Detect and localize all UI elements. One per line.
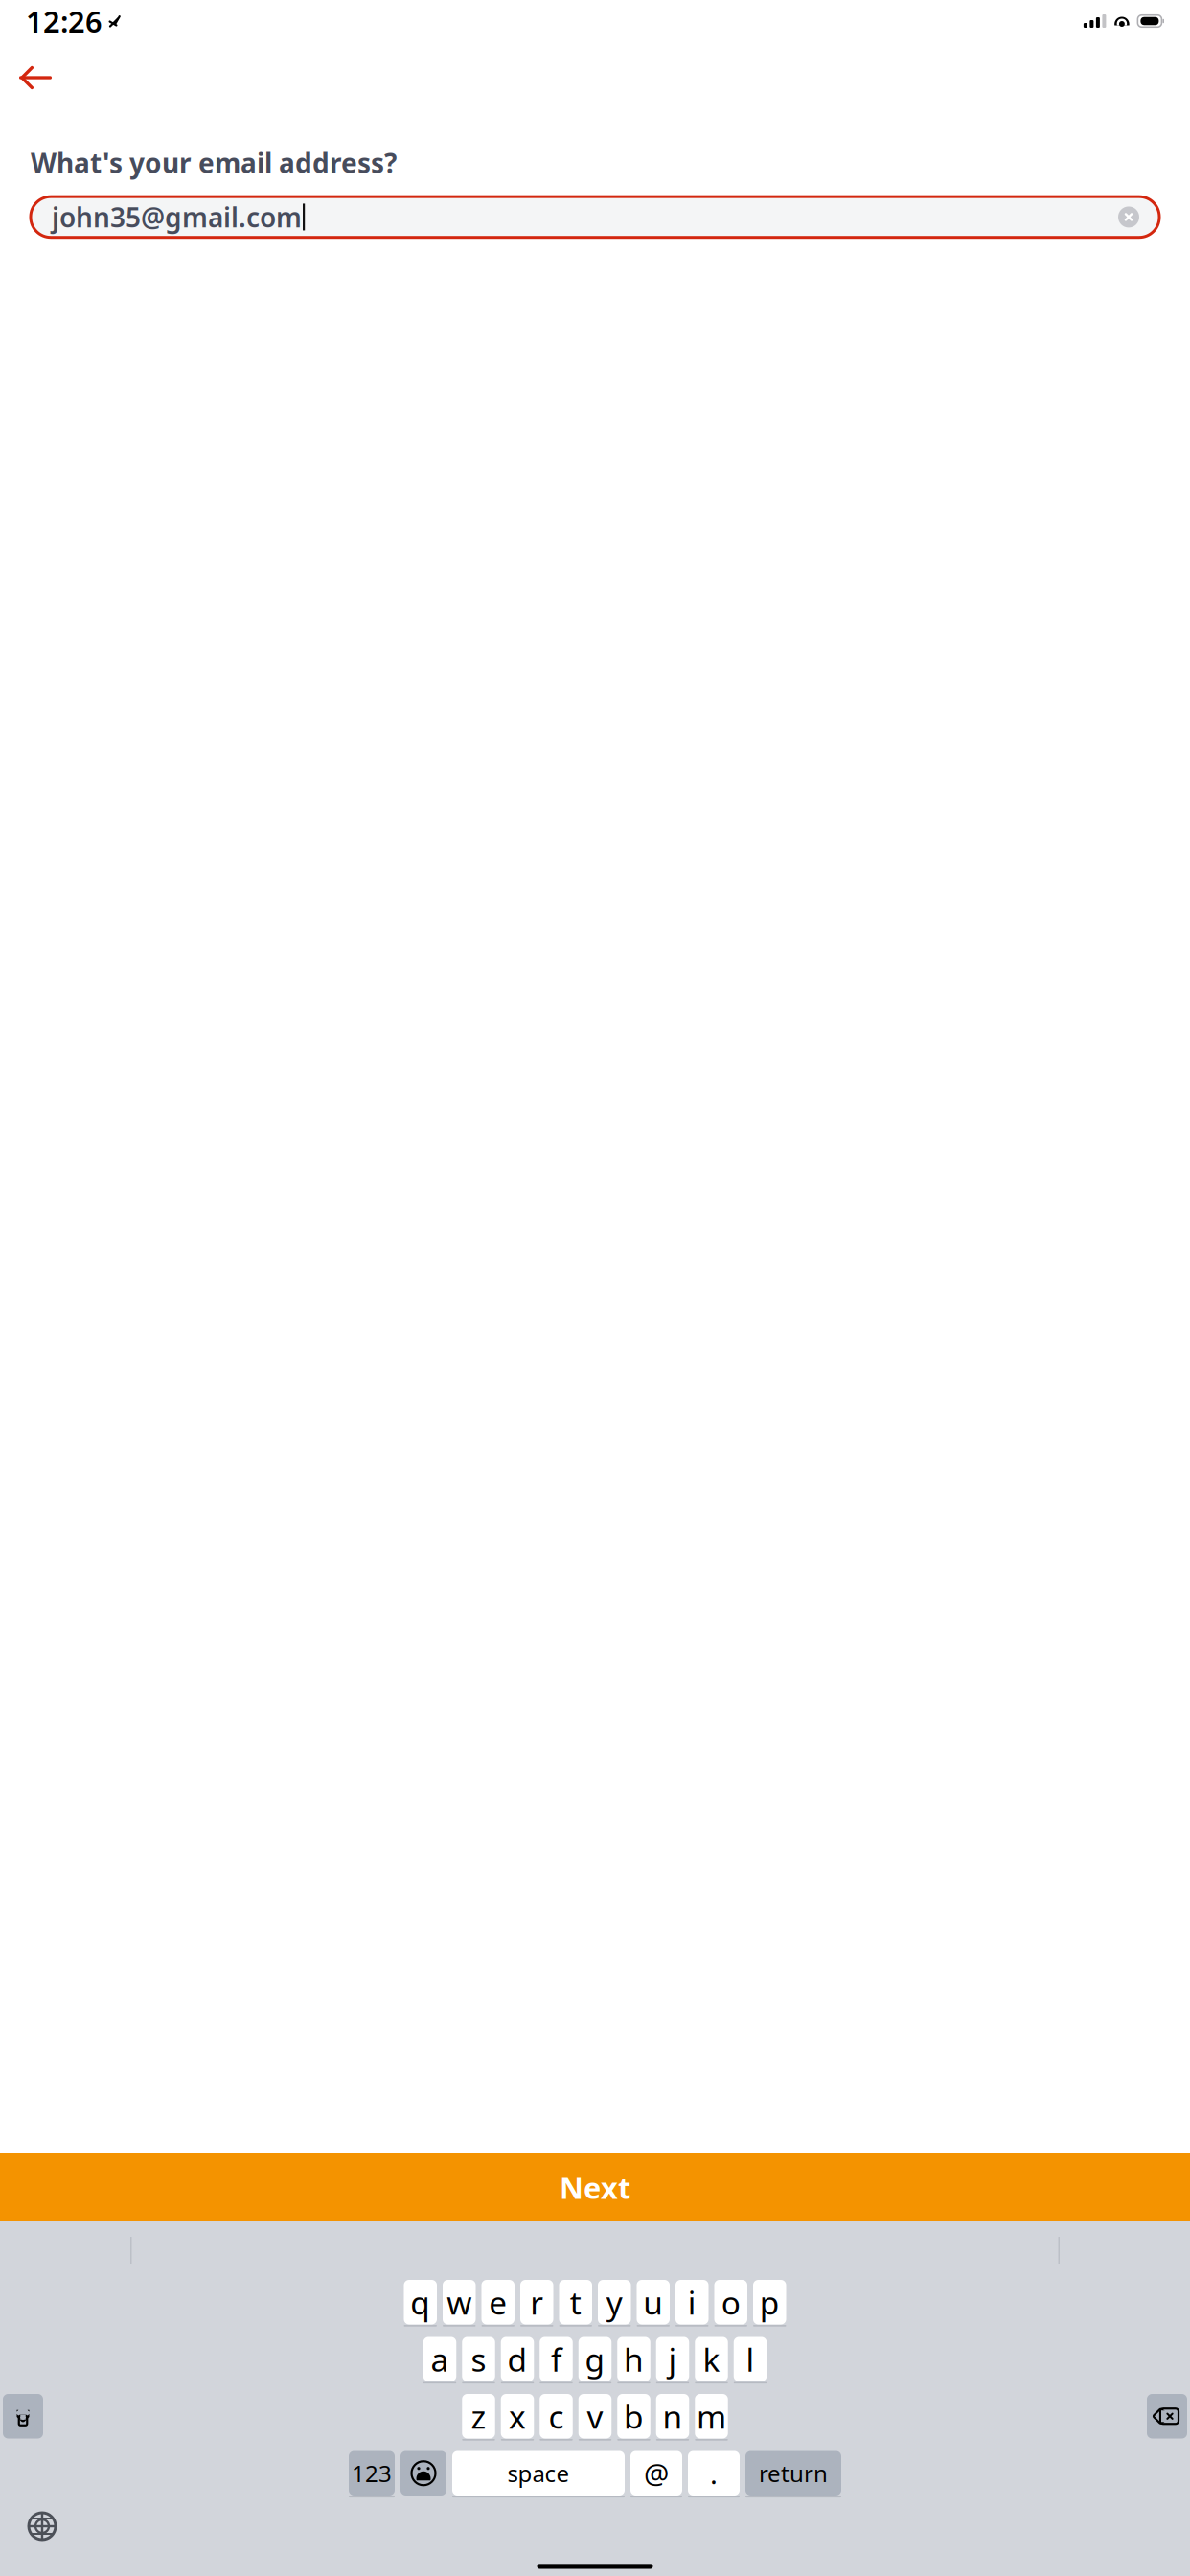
button[interactable]: b (617, 2394, 650, 2438)
staticText: m (697, 2395, 726, 2437)
button[interactable]: y (598, 2280, 631, 2324)
button[interactable]: f (540, 2337, 573, 2381)
staticText: i (688, 2281, 696, 2323)
button[interactable]: Delete (1147, 2394, 1187, 2438)
button[interactable]: Emoji (400, 2451, 446, 2495)
staticText: l (746, 2338, 755, 2380)
staticText: space (507, 2458, 570, 2489)
button[interactable]: j (656, 2337, 689, 2381)
button[interactable]: 123 (349, 2451, 395, 2495)
staticText: Next (560, 2168, 630, 2207)
staticText: j (668, 2338, 677, 2380)
button[interactable]: l (734, 2337, 767, 2381)
staticText: john35@gmail.com (52, 199, 302, 235)
button[interactable]: i (675, 2280, 709, 2324)
staticText: e (489, 2281, 507, 2323)
button[interactable]: p (753, 2280, 786, 2324)
button[interactable]: q (404, 2280, 437, 2324)
staticText: d (507, 2338, 527, 2380)
button[interactable]: Shift (3, 2394, 43, 2438)
staticText: z (471, 2395, 486, 2437)
staticText: o (721, 2281, 740, 2323)
staticText: t (570, 2281, 581, 2323)
staticText: c (549, 2395, 564, 2437)
staticText: n (663, 2395, 683, 2437)
staticText: v (587, 2395, 603, 2437)
button[interactable]: Next (0, 2153, 1190, 2221)
staticText: q (410, 2281, 430, 2323)
button[interactable]: w (443, 2280, 476, 2324)
button[interactable]: z (462, 2394, 495, 2438)
staticText: r (530, 2281, 543, 2323)
button[interactable]: r (520, 2280, 553, 2324)
button[interactable]: @ (630, 2451, 682, 2495)
button[interactable]: v (579, 2394, 612, 2438)
staticText: w (447, 2281, 472, 2323)
button[interactable]: return (745, 2451, 841, 2495)
button[interactable]: h (617, 2337, 650, 2381)
button[interactable]: u (637, 2280, 670, 2324)
button[interactable]: Back (8, 55, 63, 101)
button[interactable]: x (501, 2394, 534, 2438)
staticText: s (471, 2338, 486, 2380)
button[interactable]: john35@gmail.com (31, 197, 1159, 237)
staticText: @ (644, 2455, 669, 2492)
button[interactable]: e (481, 2280, 515, 2324)
button[interactable]: . (688, 2451, 740, 2495)
staticText: k (703, 2338, 720, 2380)
staticText: x (509, 2395, 526, 2437)
button[interactable]: space (452, 2451, 625, 2495)
button[interactable]: t (559, 2280, 592, 2324)
staticText: What's your email address? (31, 145, 397, 180)
button[interactable]: c (540, 2394, 573, 2438)
button[interactable]: k (695, 2337, 728, 2381)
staticText: y (606, 2281, 623, 2323)
staticText: a (431, 2338, 449, 2380)
staticText: h (624, 2338, 644, 2380)
button[interactable]: s (462, 2337, 495, 2381)
button[interactable]: d (501, 2337, 534, 2381)
button[interactable]: o (714, 2280, 747, 2324)
button[interactable]: a (423, 2337, 456, 2381)
staticText: 12:26 (26, 2, 103, 41)
button[interactable]: n (656, 2394, 689, 2438)
staticText: . (710, 2455, 718, 2492)
button[interactable]: g (579, 2337, 612, 2381)
staticText: p (760, 2281, 780, 2323)
staticText: g (585, 2338, 605, 2380)
staticText: b (624, 2395, 644, 2437)
staticText: f (551, 2338, 561, 2380)
button[interactable]: Change keyboard (21, 2505, 63, 2547)
button[interactable]: m (695, 2394, 728, 2438)
staticText: u (643, 2281, 663, 2323)
staticText: return (759, 2458, 828, 2489)
staticText: 123 (352, 2458, 392, 2489)
